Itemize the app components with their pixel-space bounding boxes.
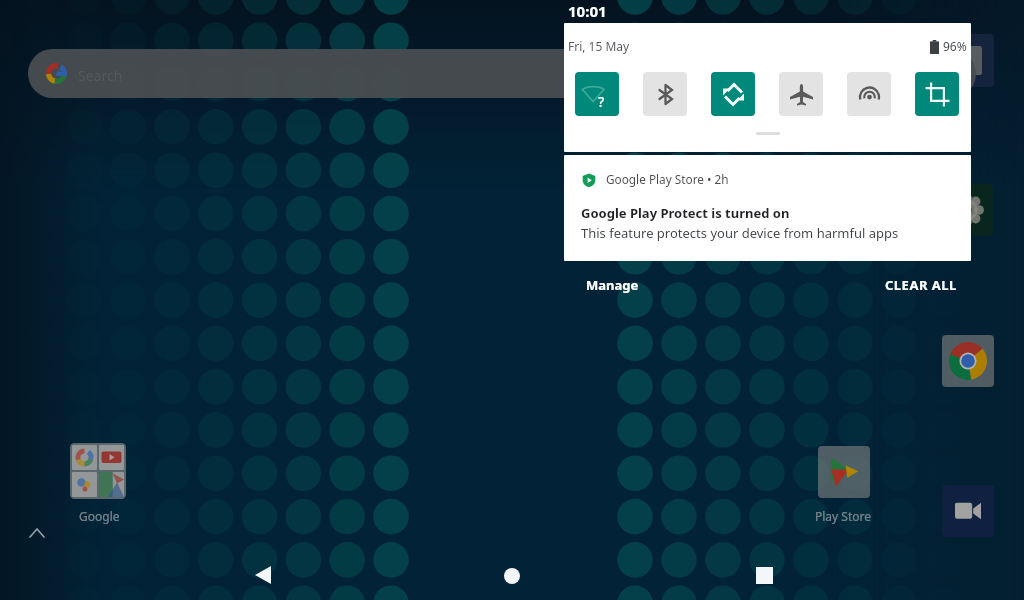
button[interactable]: Play Store <box>818 446 870 498</box>
button[interactable]: CLEAR ALL <box>877 263 963 307</box>
button[interactable]: Auto rotate <box>711 72 755 116</box>
staticText: Search <box>78 66 123 85</box>
button[interactable]: Google Play Store • 2h <box>564 155 971 261</box>
button[interactable]: Bluetooth <box>643 72 687 116</box>
staticText: Fri, 15 May <box>568 38 630 54</box>
staticText: Google <box>79 508 120 524</box>
button[interactable]: Airplane mode <box>779 72 823 116</box>
staticText: Google Play Store • 2h <box>606 171 729 187</box>
button[interactable]: Screenshot <box>915 72 959 116</box>
button[interactable]: Home <box>489 553 535 599</box>
button[interactable]: Recents <box>741 552 787 598</box>
button[interactable]: Manage <box>578 263 648 307</box>
button[interactable]: Search <box>28 49 976 98</box>
button[interactable]: All apps <box>22 518 52 548</box>
button[interactable]: Meet <box>942 485 994 537</box>
button[interactable]: App <box>941 34 994 87</box>
staticText: Manage <box>586 276 639 294</box>
staticText: This feature protects your device from h… <box>581 224 899 242</box>
staticText: ? <box>598 92 605 111</box>
staticText: Google Play Protect is turned on <box>581 204 790 222</box>
button[interactable]: Hotspot <box>847 72 891 116</box>
staticText: Play Store <box>815 508 871 524</box>
button[interactable]: Settings <box>941 184 993 236</box>
button[interactable]: Back <box>239 552 285 598</box>
staticText: CLEAR ALL <box>885 276 957 294</box>
staticText: 96% <box>943 38 967 54</box>
button[interactable]: Google folder <box>70 443 126 499</box>
button[interactable]: Wi-Fi <box>575 72 619 116</box>
button[interactable]: Chrome <box>942 335 994 387</box>
staticText: 10:01 <box>568 1 607 21</box>
